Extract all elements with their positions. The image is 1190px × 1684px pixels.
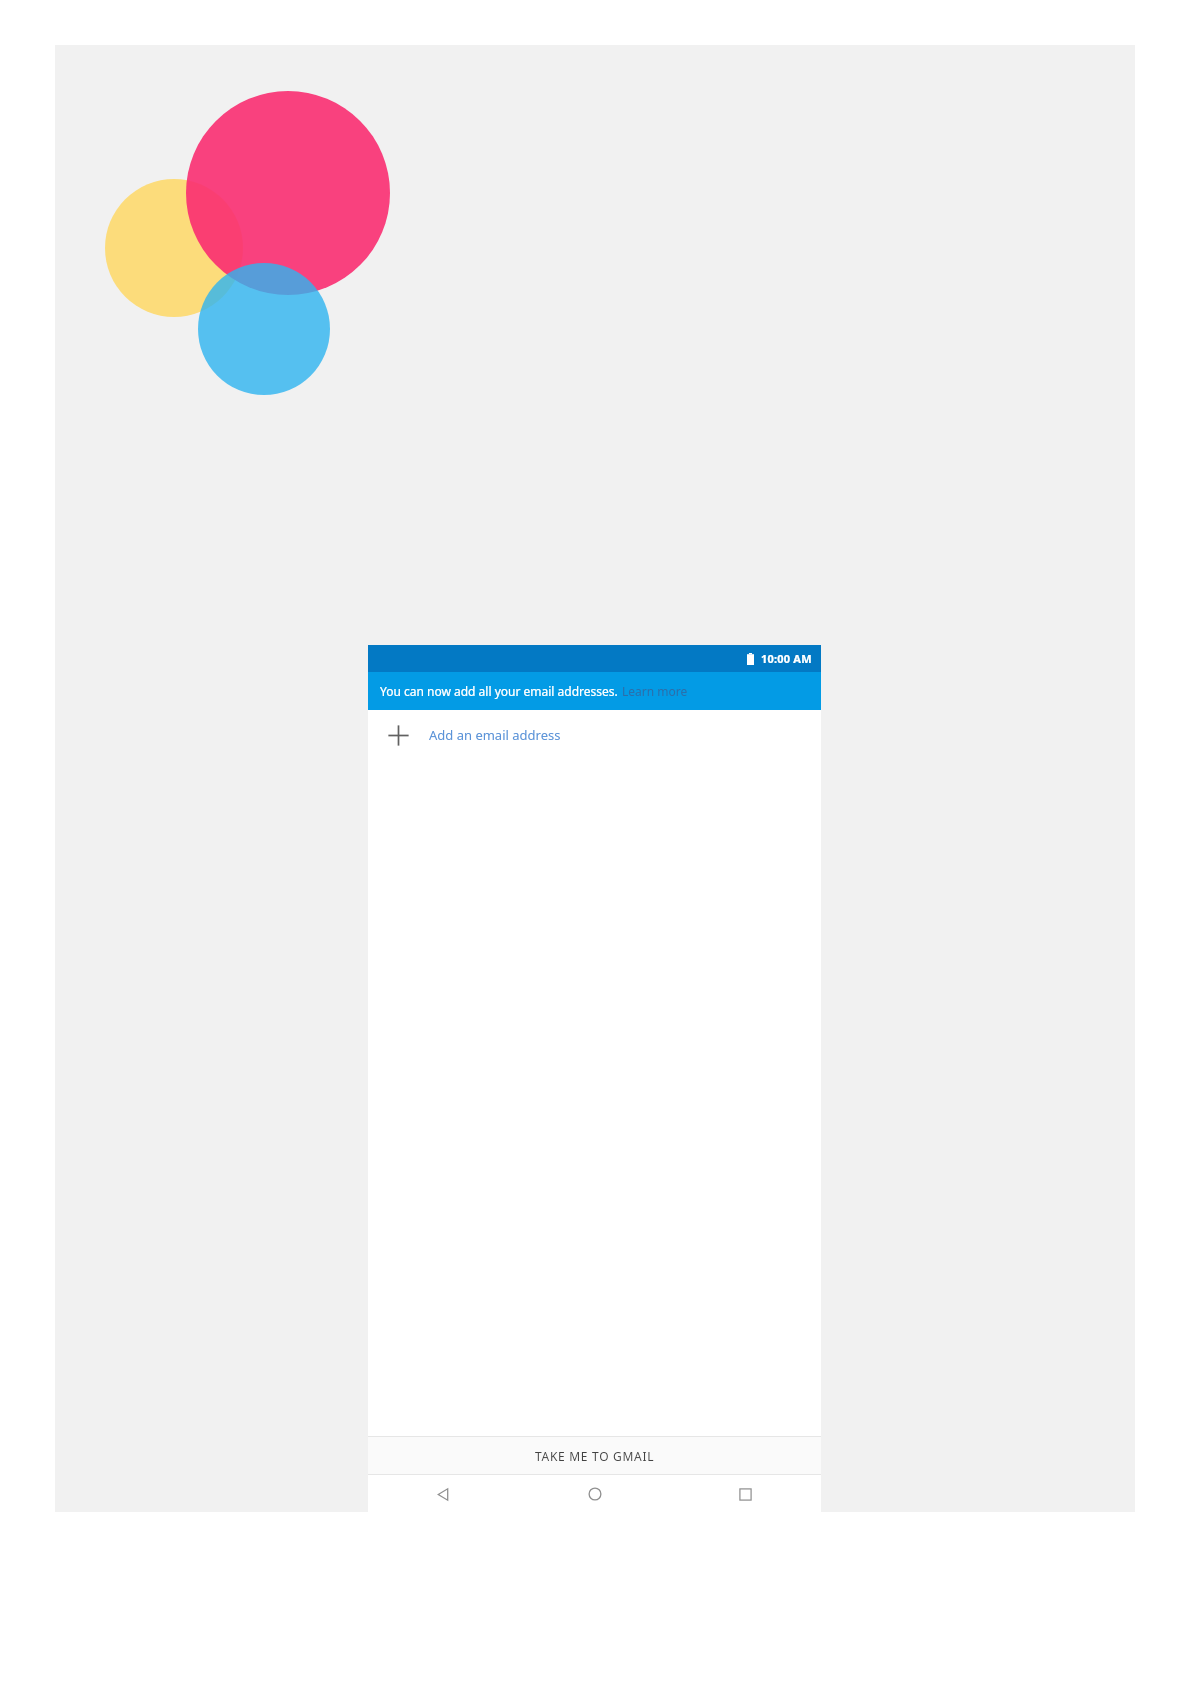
button[interactable]: Recent apps — [670, 1475, 821, 1513]
button[interactable]: Back — [368, 1475, 519, 1513]
staticText: TAKE ME TO GMAIL — [535, 1448, 655, 1464]
button[interactable]: Add an email address — [368, 710, 821, 760]
staticText: You can now add all your email addresses… — [380, 683, 618, 699]
other: Battery — [747, 653, 754, 665]
button[interactable]: You can now add all your email addresses… — [368, 672, 821, 710]
button[interactable]: Home — [519, 1475, 670, 1513]
button[interactable]: TAKE ME TO GMAIL — [368, 1437, 821, 1474]
staticText: 10:00 AM — [761, 651, 812, 666]
staticText: Add an email address — [429, 726, 561, 744]
staticText: Learn more — [622, 683, 688, 699]
